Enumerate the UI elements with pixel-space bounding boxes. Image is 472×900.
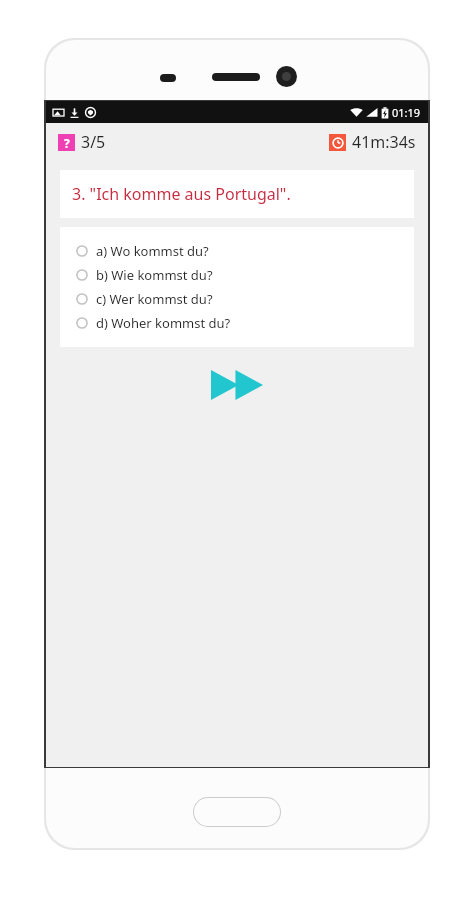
staticText: c) Wer kommst du? — [96, 290, 213, 308]
staticText: 3/5 — [81, 131, 106, 153]
button[interactable]: ? — [58, 131, 106, 153]
staticText: b) Wie kommst du? — [96, 266, 213, 284]
staticText: 41m:34s — [352, 131, 416, 153]
staticText: d) Woher kommst du? — [96, 314, 231, 332]
staticText: 01:19 — [392, 105, 421, 120]
button[interactable]: d) Woher kommst du? — [60, 311, 414, 335]
staticText: a) Wo kommst du? — [96, 242, 209, 260]
staticText: 3. "Ich komme aus Portugal". — [72, 183, 291, 205]
button[interactable]: Home — [193, 797, 281, 827]
button[interactable]: 3. "Ich komme aus Portugal". — [60, 170, 414, 218]
button[interactable]: 41m:34s — [329, 131, 416, 153]
button[interactable]: b) Wie kommst du? — [60, 263, 414, 287]
button[interactable]: c) Wer kommst du? — [60, 287, 414, 311]
staticText: ? — [64, 135, 70, 151]
button[interactable]: a) Wo kommst du? — [60, 239, 414, 263]
button[interactable]: Next question — [205, 364, 269, 406]
